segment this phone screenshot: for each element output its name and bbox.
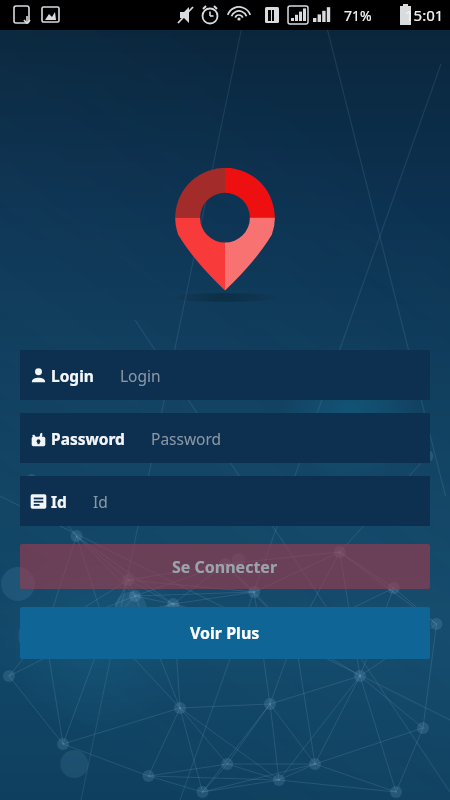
button[interactable]: Voir Plus: [20, 607, 430, 659]
button[interactable]: Id: [20, 476, 430, 526]
staticText: Se Connecter: [172, 556, 278, 578]
staticText: 71%: [344, 6, 372, 25]
button[interactable]: Password: [20, 413, 430, 463]
staticText: Id: [51, 491, 67, 512]
staticText: 15:01: [405, 5, 444, 25]
staticText: Password: [51, 428, 125, 449]
staticText: Login: [51, 365, 94, 386]
button[interactable]: Login: [20, 350, 430, 400]
staticText: Login: [120, 365, 161, 386]
button[interactable]: Se Connecter: [20, 544, 430, 589]
staticText: Password: [151, 428, 222, 449]
staticText: Voir Plus: [190, 622, 260, 644]
staticText: Id: [93, 491, 108, 512]
